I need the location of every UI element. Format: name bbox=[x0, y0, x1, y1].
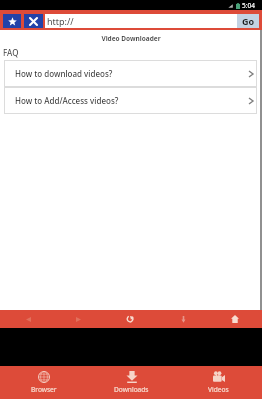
staticText: How to Add/Access videos? bbox=[15, 95, 119, 106]
staticText: 5:04 bbox=[242, 1, 255, 10]
button[interactable]: Go bbox=[237, 14, 259, 28]
button[interactable]: Back bbox=[19, 310, 37, 328]
button[interactable]: Close bbox=[24, 14, 43, 28]
button[interactable]: Videos bbox=[175, 366, 262, 399]
button[interactable]: Bookmark bbox=[3, 14, 21, 28]
staticText: Browser bbox=[31, 385, 57, 394]
button[interactable]: Downloads bbox=[88, 366, 175, 399]
staticText: How to download videos? bbox=[15, 68, 113, 79]
staticText: FAQ bbox=[3, 47, 19, 58]
staticText: Video Downloader bbox=[0, 34, 262, 43]
staticText: Downloads bbox=[114, 385, 149, 394]
staticText: http:// bbox=[47, 15, 74, 27]
button[interactable]: Download bbox=[174, 310, 192, 328]
button[interactable]: How to Add/Access videos? bbox=[4, 87, 257, 114]
button[interactable]: http:// bbox=[45, 14, 237, 28]
button[interactable]: Forward bbox=[69, 310, 87, 328]
button[interactable]: Refresh bbox=[121, 310, 139, 328]
staticText: Go bbox=[242, 15, 255, 27]
staticText: Videos bbox=[208, 385, 229, 394]
button[interactable]: Browser bbox=[0, 366, 88, 399]
button[interactable]: How to download videos? bbox=[4, 60, 257, 87]
button[interactable]: Home bbox=[226, 310, 244, 328]
